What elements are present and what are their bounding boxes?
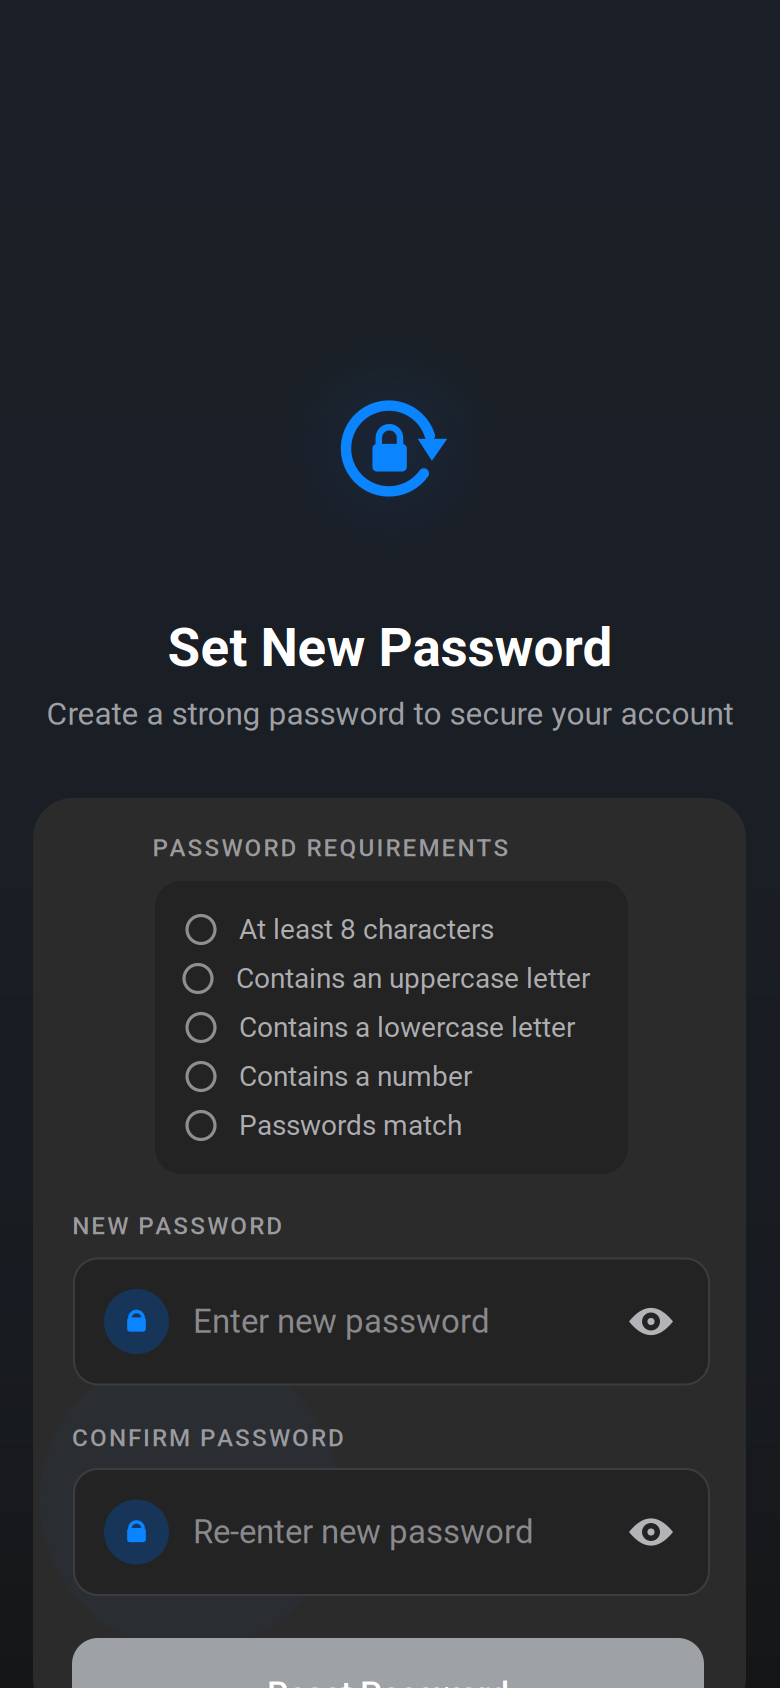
staticText: C O N F I R M P A S S W O R D (72, 1424, 344, 1452)
staticText: Passwords match (239, 1109, 462, 1142)
button[interactable]: Show password (611, 1273, 691, 1369)
staticText: Enter new password (193, 1302, 490, 1341)
staticText: Contains a lowercase letter (239, 1011, 575, 1044)
staticText: At least 8 characters (239, 913, 494, 946)
staticText: Create a strong password to secure your … (46, 695, 733, 732)
staticText: Contains a number (239, 1060, 472, 1093)
staticText: Reset Password (267, 1674, 509, 1688)
button[interactable]: Reset Password (72, 1638, 704, 1688)
staticText: Contains an uppercase letter (236, 962, 590, 995)
staticText: Re-enter new password (193, 1513, 534, 1551)
staticText: Set New Password (167, 617, 612, 679)
staticText: P A S S W O R D R E Q U I R E M E N T S (152, 834, 508, 862)
button[interactable]: Show password (611, 1484, 691, 1580)
staticText: N E W P A S S W O R D (72, 1212, 282, 1240)
